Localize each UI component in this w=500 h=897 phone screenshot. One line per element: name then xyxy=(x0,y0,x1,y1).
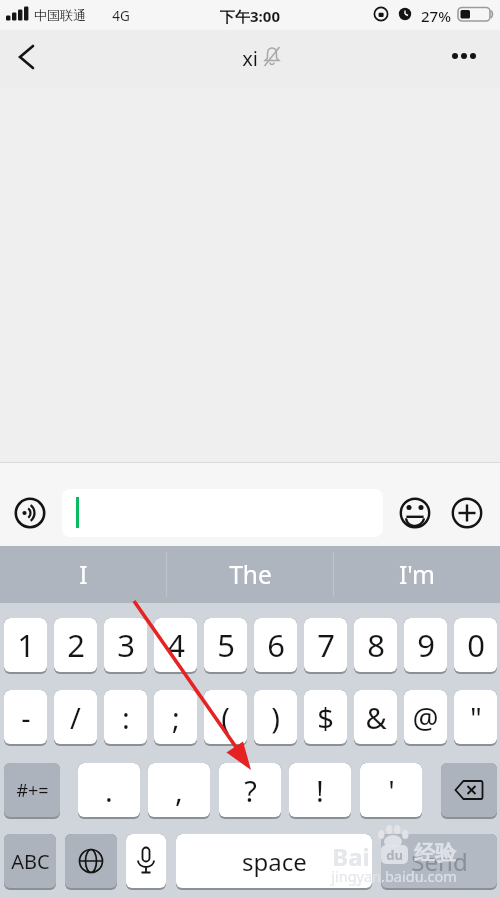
staticText: 4G xyxy=(112,7,130,25)
staticText: - xyxy=(21,698,31,737)
staticText: 2 xyxy=(67,624,85,666)
staticText: ' xyxy=(388,771,395,810)
button[interactable]: 1 xyxy=(4,618,47,674)
staticText: $ xyxy=(317,698,334,737)
button[interactable]: @ xyxy=(404,690,447,746)
staticText: 9 xyxy=(417,624,435,666)
staticText: ! xyxy=(316,771,324,810)
staticText: 3 xyxy=(117,624,135,666)
button[interactable] xyxy=(441,763,497,819)
staticText: . xyxy=(105,771,113,810)
staticText: The xyxy=(229,558,272,591)
button[interactable] xyxy=(399,497,431,529)
button[interactable] xyxy=(126,834,166,890)
button[interactable] xyxy=(8,42,40,74)
button[interactable]: I'm xyxy=(334,546,500,603)
button[interactable]: & xyxy=(354,690,397,746)
button[interactable]: 5 xyxy=(204,618,247,674)
button[interactable]: ABC xyxy=(4,834,56,890)
button[interactable]: / xyxy=(54,690,97,746)
staticText: " xyxy=(470,698,482,737)
button[interactable] xyxy=(451,497,483,529)
button[interactable]: " xyxy=(454,690,497,746)
button[interactable]: space xyxy=(176,834,372,890)
button[interactable]: 9 xyxy=(404,618,447,674)
button[interactable]: I xyxy=(0,546,166,603)
button[interactable]: $ xyxy=(304,690,347,746)
button[interactable]: 3 xyxy=(104,618,147,674)
button[interactable]: 0 xyxy=(454,618,497,674)
staticText: @ xyxy=(412,698,439,737)
button[interactable]: 7 xyxy=(304,618,347,674)
staticText: I xyxy=(79,558,88,591)
button[interactable] xyxy=(444,42,484,70)
button[interactable]: : xyxy=(104,690,147,746)
staticText: 1 xyxy=(17,624,35,666)
button[interactable]: ? xyxy=(219,763,281,819)
staticText: ; xyxy=(172,698,180,737)
staticText: 4 xyxy=(167,624,185,666)
staticText: ( xyxy=(221,698,230,737)
staticText: 7 xyxy=(317,624,335,666)
button[interactable]: 6 xyxy=(254,618,297,674)
staticText: du xyxy=(386,846,403,864)
button[interactable] xyxy=(62,489,383,537)
staticText: ? xyxy=(244,771,257,810)
button[interactable]: The xyxy=(167,546,333,603)
button[interactable]: . xyxy=(78,763,140,819)
button[interactable]: , xyxy=(148,763,210,819)
staticText: ABC xyxy=(11,848,50,875)
button[interactable]: #+= xyxy=(4,763,60,819)
button[interactable]: - xyxy=(4,690,47,746)
staticText: 27% xyxy=(421,6,451,26)
staticText: Bai xyxy=(332,840,370,873)
button[interactable]: ; xyxy=(154,690,197,746)
staticText: jingyan.baidu.com xyxy=(331,866,457,886)
staticText: Send xyxy=(411,845,468,878)
button[interactable] xyxy=(65,834,117,890)
staticText: ) xyxy=(271,698,280,737)
staticText: / xyxy=(70,698,81,737)
staticText: 5 xyxy=(217,624,235,666)
button[interactable]: ( xyxy=(204,690,247,746)
button[interactable]: ) xyxy=(254,690,297,746)
staticText: 0 xyxy=(467,624,485,666)
button[interactable]: 2 xyxy=(54,618,97,674)
staticText: 下午3:00 xyxy=(220,6,280,26)
staticText: 8 xyxy=(367,624,385,666)
button[interactable]: ' xyxy=(360,763,422,819)
staticText: 经验 xyxy=(414,840,456,866)
button[interactable] xyxy=(14,497,46,529)
staticText: xi xyxy=(242,45,258,72)
staticText: 6 xyxy=(267,624,285,666)
staticText: , xyxy=(175,771,183,810)
staticText: & xyxy=(365,698,387,737)
button[interactable]: 4 xyxy=(154,618,197,674)
staticText: 中国联通 xyxy=(34,7,86,23)
staticText: I'm xyxy=(399,558,435,591)
staticText: #+= xyxy=(16,778,49,803)
staticText: : xyxy=(122,698,130,737)
button[interactable]: Send xyxy=(381,834,497,890)
button[interactable]: ! xyxy=(289,763,351,819)
button[interactable]: 8 xyxy=(354,618,397,674)
staticText: space xyxy=(242,845,307,878)
